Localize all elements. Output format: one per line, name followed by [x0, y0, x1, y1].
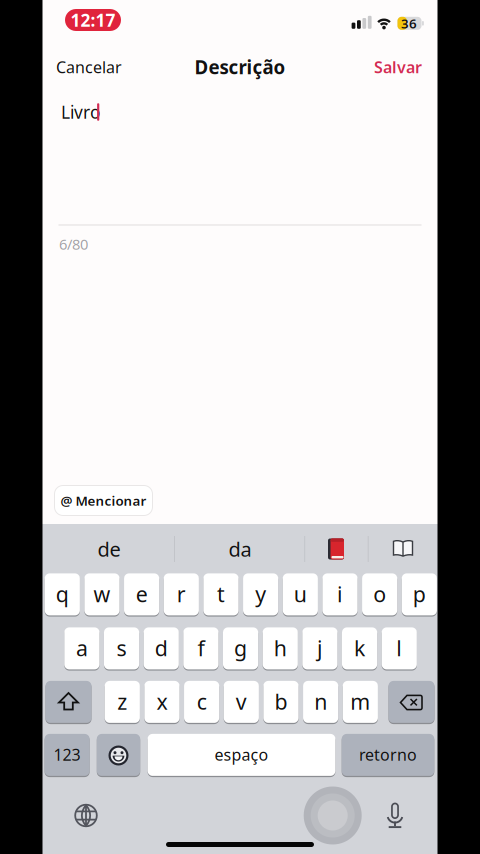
staticText: 6/80: [59, 234, 88, 254]
button[interactable]: [97, 734, 140, 777]
staticText: n: [314, 687, 327, 716]
button[interactable]: Cancelar: [56, 52, 166, 82]
button[interactable]: m: [343, 681, 378, 724]
staticText: 123: [54, 744, 81, 765]
button[interactable]: [304, 786, 362, 844]
staticText: r: [177, 580, 186, 608]
staticText: 36: [401, 14, 417, 32]
button[interactable]: o: [362, 573, 397, 617]
button[interactable]: k: [342, 627, 377, 671]
button[interactable]: h: [263, 627, 298, 671]
staticText: u: [294, 580, 307, 608]
button[interactable]: c: [184, 681, 219, 724]
button[interactable]: Salvar: [312, 52, 422, 82]
button[interactable]: [380, 795, 410, 835]
staticText: de: [97, 536, 120, 562]
staticText: o: [373, 580, 386, 608]
button[interactable]: q: [45, 573, 80, 617]
button[interactable]: n: [303, 681, 338, 724]
staticText: a: [76, 634, 88, 662]
button[interactable]: r: [164, 573, 199, 617]
staticText: espaço: [214, 744, 268, 765]
button[interactable]: 123: [45, 734, 90, 777]
button[interactable]: b: [263, 681, 299, 724]
staticText: v: [236, 687, 247, 716]
button[interactable]: s: [104, 627, 139, 671]
staticText: m: [350, 687, 370, 716]
staticText: q: [56, 580, 69, 608]
button[interactable]: l: [382, 627, 417, 671]
staticText: l: [396, 634, 402, 662]
staticText: Livro: [61, 100, 100, 123]
button[interactable]: [388, 681, 434, 724]
staticText: p: [413, 580, 426, 608]
button[interactable]: [66, 795, 106, 835]
staticText: Salvar: [374, 56, 422, 78]
button[interactable]: g: [223, 627, 258, 671]
button[interactable]: j: [302, 627, 337, 671]
button[interactable]: e: [124, 573, 159, 617]
button[interactable]: v: [224, 681, 259, 724]
staticText: 12:17: [70, 8, 115, 31]
staticText: k: [354, 634, 365, 662]
button[interactable]: da: [185, 529, 295, 569]
button[interactable]: u: [283, 573, 318, 617]
staticText: Cancelar: [56, 56, 122, 78]
button[interactable]: de: [54, 529, 164, 569]
staticText: e: [136, 580, 148, 608]
staticText: d: [155, 634, 168, 662]
staticText: t: [217, 580, 225, 608]
button[interactable]: @ Mencionar: [54, 485, 153, 516]
button[interactable]: t: [203, 573, 239, 617]
staticText: s: [117, 634, 127, 662]
button[interactable]: z: [105, 681, 140, 724]
button[interactable]: a: [64, 627, 99, 671]
button[interactable]: [45, 681, 91, 724]
button[interactable]: x: [144, 681, 180, 724]
button[interactable]: w: [84, 573, 120, 617]
staticText: g: [234, 634, 247, 662]
staticText: f: [197, 634, 204, 662]
staticText: retorno: [359, 744, 417, 765]
button[interactable]: d: [144, 627, 179, 671]
button[interactable]: [316, 529, 356, 569]
button[interactable]: espaço: [148, 734, 335, 777]
button[interactable]: retorno: [342, 734, 434, 777]
button[interactable]: p: [402, 573, 437, 617]
staticText: y: [255, 580, 266, 608]
staticText: da: [228, 536, 251, 562]
staticText: w: [93, 580, 110, 608]
staticText: i: [337, 580, 343, 608]
button[interactable]: y: [243, 573, 278, 617]
button[interactable]: [380, 529, 426, 569]
staticText: c: [197, 687, 207, 716]
staticText: z: [117, 687, 127, 716]
staticText: j: [317, 634, 323, 662]
staticText: Descrição: [194, 55, 285, 79]
staticText: h: [274, 634, 287, 662]
button[interactable]: f: [183, 627, 218, 671]
staticText: b: [274, 687, 287, 716]
staticText: x: [156, 687, 167, 716]
button[interactable]: i: [322, 573, 358, 617]
staticText: @ Mencionar: [60, 492, 146, 509]
